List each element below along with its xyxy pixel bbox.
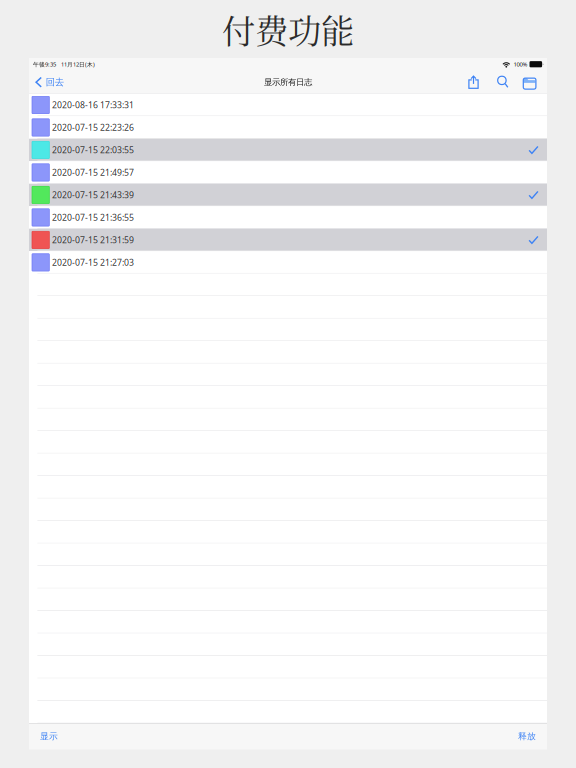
staticText: 2020-07-15 21:43:39 — [52, 189, 134, 201]
button[interactable]: 显示 — [34, 725, 64, 747]
staticText: 2020-07-15 21:36:55 — [52, 211, 134, 223]
button[interactable]: Search — [488, 70, 517, 94]
staticText: 2020-07-15 21:31:59 — [52, 234, 134, 246]
staticText: 释放 — [518, 731, 536, 742]
staticText: 显示 — [40, 731, 58, 742]
button[interactable]: Share — [458, 70, 488, 94]
staticText: 回去 — [46, 76, 64, 88]
staticText: 11月12日(木) — [61, 60, 95, 68]
button[interactable]: 2020-07-15 22:03:55 — [29, 139, 547, 161]
staticText: 2020-07-15 21:27:03 — [52, 256, 134, 268]
staticText: 2020-07-15 21:49:57 — [52, 167, 134, 178]
staticText: 午後9:35 — [33, 60, 56, 68]
button[interactable]: 2020-07-15 21:49:57 — [29, 161, 547, 184]
staticText: 2020-07-15 22:23:26 — [52, 122, 134, 133]
button[interactable]: 释放 — [512, 725, 542, 747]
button[interactable]: 2020-07-15 21:27:03 — [29, 251, 547, 274]
button[interactable]: 回去 — [32, 71, 67, 93]
button[interactable]: 2020-08-16 17:33:31 — [29, 94, 547, 116]
button[interactable]: Folder — [517, 70, 541, 94]
button[interactable]: 2020-07-15 21:43:39 — [29, 184, 547, 206]
button[interactable]: 2020-07-15 21:31:59 — [29, 229, 547, 251]
staticText: 2020-07-15 22:03:55 — [52, 144, 134, 156]
staticText: 显示所有日志 — [264, 77, 312, 87]
staticText: 付费功能 — [222, 5, 354, 53]
button[interactable]: 2020-07-15 21:36:55 — [29, 206, 547, 229]
staticText: 2020-08-16 17:33:31 — [52, 99, 134, 111]
button[interactable]: 2020-07-15 22:23:26 — [29, 116, 547, 139]
staticText: 100% — [513, 60, 527, 68]
